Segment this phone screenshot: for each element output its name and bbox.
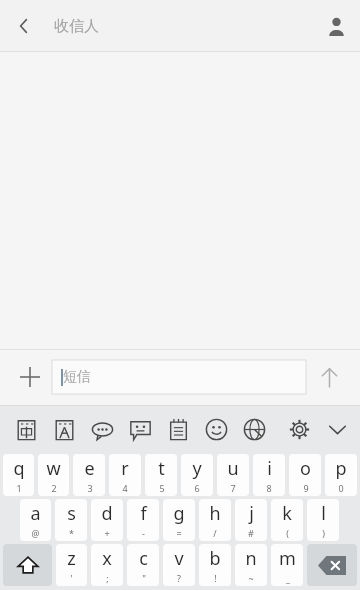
staticText: # [248,527,254,539]
button[interactable]: 短信 [52,360,306,394]
staticText: 8 [266,482,272,494]
button[interactable]: Quick replies [121,407,159,451]
staticText: 3 [87,482,93,494]
staticText: p [335,456,347,481]
button[interactable]: j [235,499,267,541]
button[interactable]: Add attachment [8,355,52,399]
button[interactable]: e [73,454,105,496]
staticText: 7 [230,482,236,494]
staticText: x [102,546,112,571]
staticText: o [300,456,311,481]
staticText: 短信 [63,368,91,386]
staticText: b [209,546,221,571]
button[interactable]: n [235,544,267,586]
staticText: l [321,501,326,526]
staticText: 4 [122,482,128,494]
staticText: ) [322,527,325,539]
staticText: j [249,501,254,526]
staticText: z [67,546,76,571]
button[interactable]: x [91,544,123,586]
button[interactable]: Phrases [83,407,121,451]
button[interactable]: m [271,544,303,586]
staticText: ' [70,572,73,584]
staticText: c [139,546,148,571]
button[interactable]: Hide keyboard [318,407,356,451]
button[interactable]: g [163,499,195,541]
button[interactable]: f [127,499,159,541]
staticText: 5 [159,482,165,494]
staticText: n [245,546,257,571]
staticText: u [227,456,239,481]
staticText: ? [177,572,181,584]
button[interactable]: h [199,499,231,541]
staticText: ~ [248,572,254,584]
staticText: d [101,501,113,526]
button[interactable]: q [3,454,34,496]
button[interactable]: Backspace [307,544,357,586]
button[interactable]: Latin input [45,407,83,451]
button[interactable]: Settings [280,407,318,451]
button[interactable]: u [217,454,249,496]
staticText: " [142,572,146,584]
staticText: h [209,501,221,526]
staticText: w [46,456,61,481]
staticText: ! [214,572,217,584]
button[interactable]: o [289,454,321,496]
button[interactable]: Shift [3,544,52,586]
staticText: i [267,456,272,481]
button[interactable]: s [55,499,87,541]
button[interactable]: i [253,454,285,496]
staticText: * [69,527,74,539]
staticText: f [140,501,147,526]
button[interactable]: Translate [235,407,273,451]
staticText: @ [31,527,40,539]
button[interactable]: Back [0,2,48,50]
staticText: ( [286,527,289,539]
button[interactable]: Clipboard [159,407,197,451]
staticText: 6 [194,482,200,494]
button[interactable]: Send [306,354,352,400]
button[interactable]: l [307,499,339,541]
staticText: t [158,456,165,481]
button[interactable]: a [20,499,51,541]
button[interactable]: p [325,454,357,496]
button[interactable]: z [56,544,87,586]
button[interactable]: Contacts [312,2,360,50]
button[interactable]: y [181,454,213,496]
button[interactable]: d [91,499,123,541]
staticText: r [121,456,129,481]
button[interactable]: k [271,499,303,541]
staticText: q [13,456,25,481]
staticText: v [174,546,184,571]
staticText: 收信人 [54,17,99,36]
staticText: a [30,501,41,526]
staticText: k [282,501,292,526]
staticText: / [213,527,217,539]
button[interactable]: r [109,454,141,496]
staticText: 9 [303,482,309,494]
staticText: 2 [51,482,57,494]
staticText: ; [106,572,109,584]
button[interactable]: Chinese input [7,407,45,451]
staticText: g [173,501,185,526]
button[interactable]: c [127,544,159,586]
staticText: s [67,501,76,526]
button[interactable]: t [145,454,177,496]
staticText: 1 [16,482,22,494]
staticText: - [142,527,145,539]
button[interactable]: b [199,544,231,586]
button[interactable]: Emoji [197,407,235,451]
button[interactable]: w [38,454,69,496]
staticText: _ [286,572,290,584]
staticText: 0 [338,482,344,494]
staticText: + [104,527,110,539]
button[interactable]: v [163,544,195,586]
staticText: = [176,527,182,539]
staticText: m [279,546,296,571]
staticText: e [84,456,95,481]
staticText: y [192,456,202,481]
